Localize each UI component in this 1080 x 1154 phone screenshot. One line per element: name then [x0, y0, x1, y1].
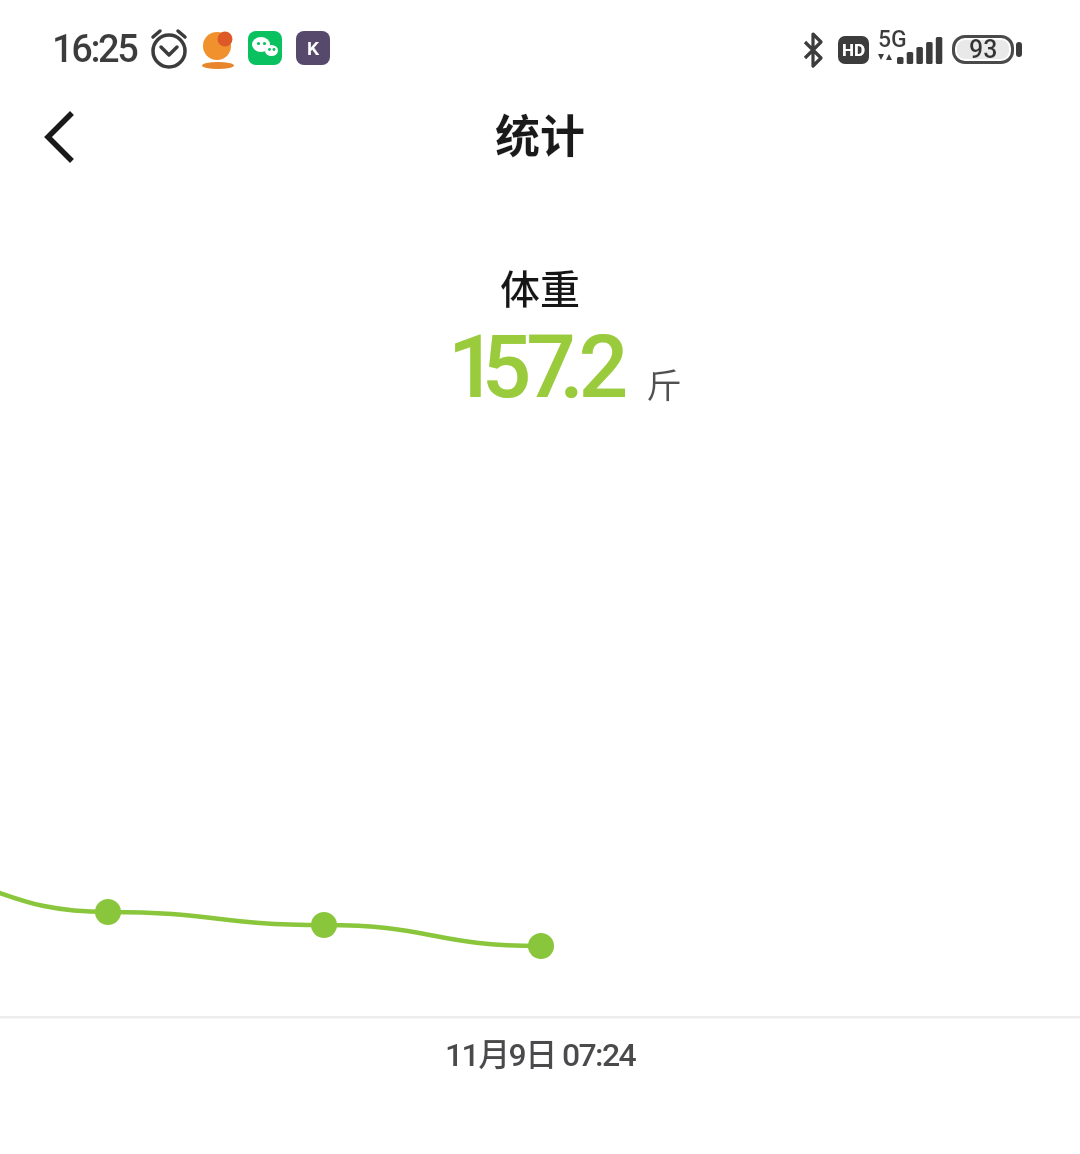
staticText: K: [307, 37, 319, 59]
staticText: 斤: [647, 359, 681, 408]
staticText: 5G: [878, 26, 907, 53]
staticText: HD: [842, 40, 866, 60]
staticText: 11月9日 07:24: [445, 1029, 636, 1075]
button[interactable]: [24, 98, 94, 176]
staticText: 157.2: [448, 316, 629, 418]
staticText: 16:25: [52, 27, 137, 72]
staticText: 统计: [495, 101, 586, 166]
staticText: 93: [969, 35, 998, 64]
staticText: 体重: [500, 258, 580, 316]
